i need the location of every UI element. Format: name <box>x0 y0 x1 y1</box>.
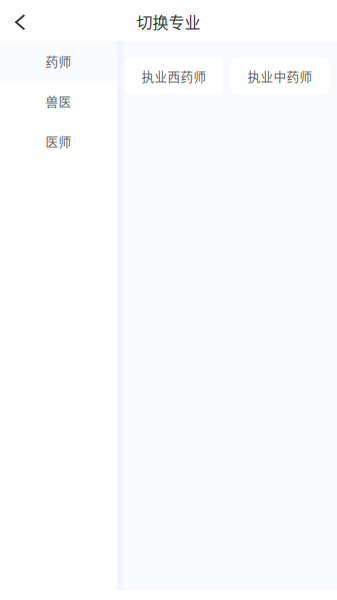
staticText: 医师 <box>45 132 71 150</box>
button[interactable]: 执业中药师 <box>231 58 329 94</box>
button[interactable]: Back <box>0 0 40 41</box>
button[interactable]: 药师 <box>0 41 117 81</box>
staticText: 药师 <box>45 52 71 70</box>
button[interactable]: 医师 <box>0 121 117 161</box>
staticText: 兽医 <box>45 92 71 110</box>
staticText: 执业西药师 <box>141 67 206 85</box>
button[interactable]: 兽医 <box>0 81 117 121</box>
staticText: 切换专业 <box>136 10 200 33</box>
button[interactable]: 执业西药师 <box>125 58 223 94</box>
staticText: 执业中药师 <box>247 67 312 85</box>
